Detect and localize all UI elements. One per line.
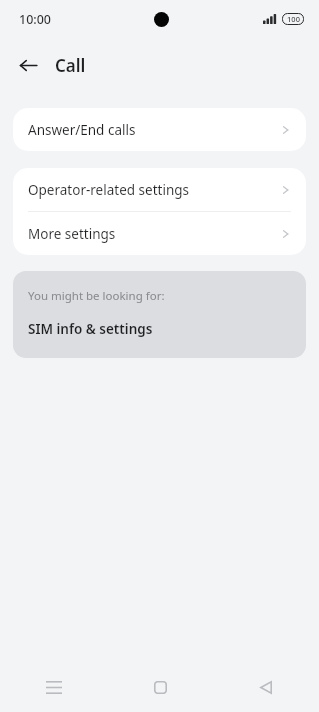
button[interactable]: Back (8, 45, 48, 85)
staticText: Operator-related settings (28, 181, 278, 199)
staticText: 100 (287, 14, 300, 24)
staticText: Answer/End calls (28, 121, 278, 139)
button[interactable]: Answer/End calls (13, 108, 306, 151)
staticText: Call (55, 54, 86, 77)
staticText: 10:00 (19, 11, 52, 28)
staticText: SIM info & settings (28, 320, 153, 338)
staticText: More settings (28, 225, 278, 243)
staticText: You might be looking for: (28, 288, 165, 304)
button[interactable]: Recents (0, 662, 107, 712)
button[interactable]: Home (107, 662, 213, 712)
button[interactable]: Operator-related settings (13, 168, 306, 211)
button[interactable]: Back (213, 662, 319, 712)
button[interactable]: You might be looking for: (13, 271, 306, 358)
button[interactable]: More settings (13, 212, 306, 255)
